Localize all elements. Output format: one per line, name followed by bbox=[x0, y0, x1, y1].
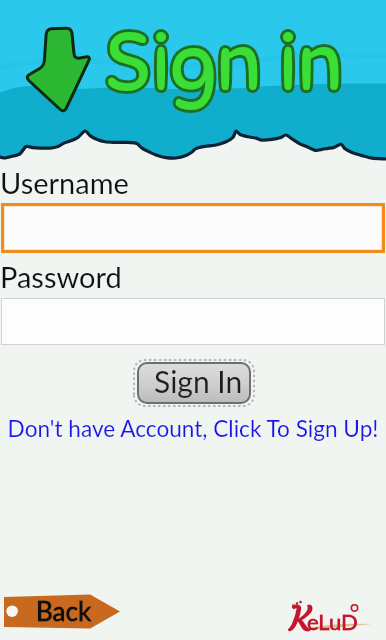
staticText: eLuD bbox=[307, 608, 358, 634]
staticText: Sign In bbox=[154, 363, 243, 399]
staticText: Password bbox=[0, 259, 122, 294]
button[interactable]: Don't have Account, Click To Sign Up! bbox=[0, 415, 386, 442]
button[interactable]: Sign In bbox=[133, 359, 255, 407]
button[interactable] bbox=[1, 298, 385, 345]
staticText: Back bbox=[36, 595, 92, 626]
staticText: Username bbox=[0, 165, 129, 200]
staticText: Sign in bbox=[104, 12, 344, 114]
button[interactable] bbox=[1, 203, 385, 253]
staticText: Sign in bbox=[104, 12, 344, 114]
other: KeLuD logo bbox=[287, 595, 386, 640]
button[interactable]: Back bbox=[3, 594, 120, 629]
staticText: K bbox=[290, 598, 311, 640]
